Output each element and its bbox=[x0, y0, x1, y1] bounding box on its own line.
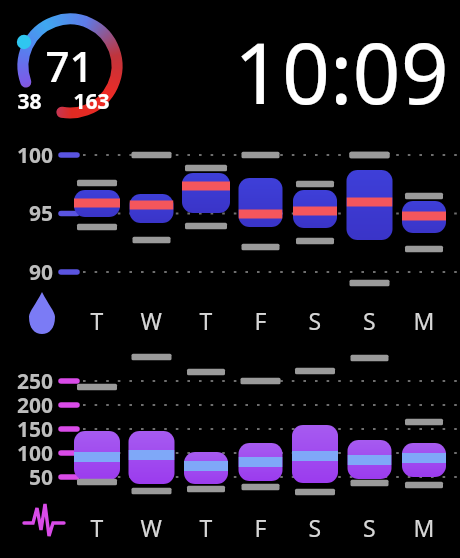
button[interactable]: Health summary bbox=[0, 0, 460, 558]
